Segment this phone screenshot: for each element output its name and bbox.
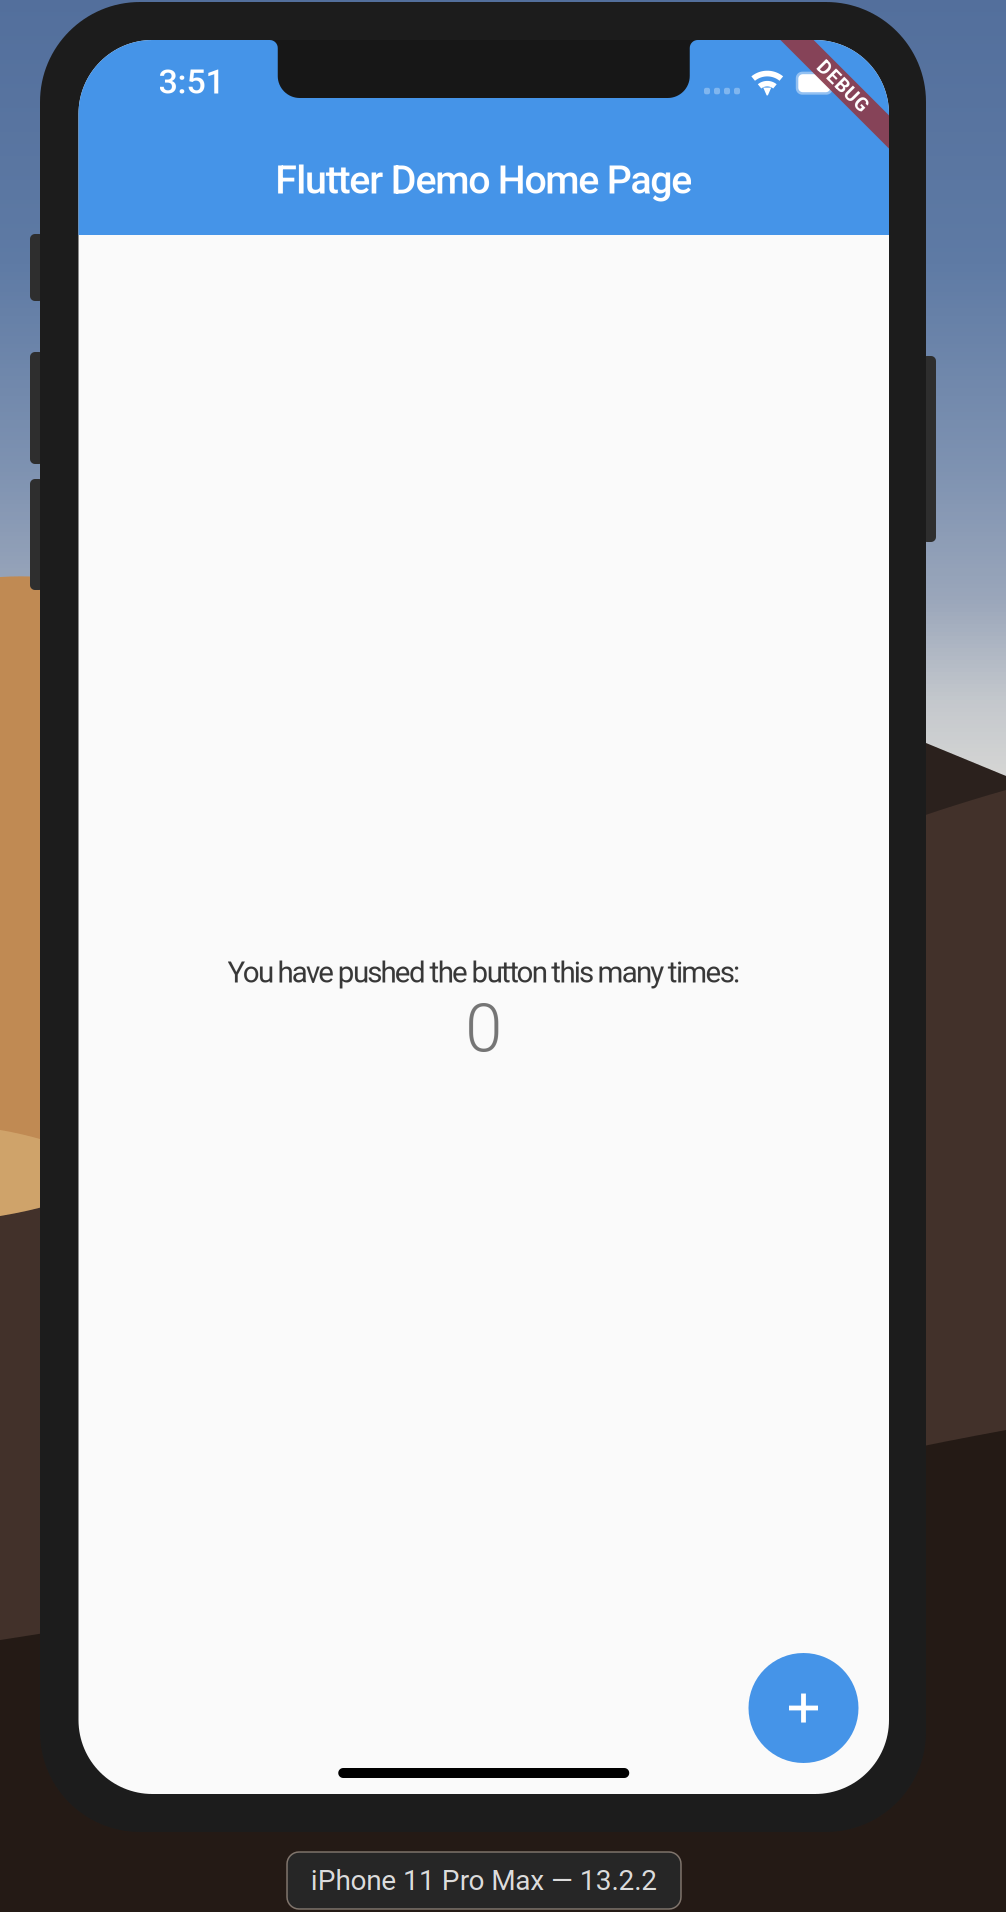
staticText: iPhone 11 Pro Max — 13.2.2	[311, 1864, 657, 1897]
staticText: DEBUG	[811, 75, 875, 97]
staticText: 3:51	[158, 62, 224, 102]
staticText: 0	[465, 990, 502, 1068]
staticText: Flutter Demo Home Page	[275, 157, 692, 203]
button[interactable]: Increment	[748, 1653, 858, 1763]
staticText: You have pushed the button this many tim…	[227, 955, 740, 990]
